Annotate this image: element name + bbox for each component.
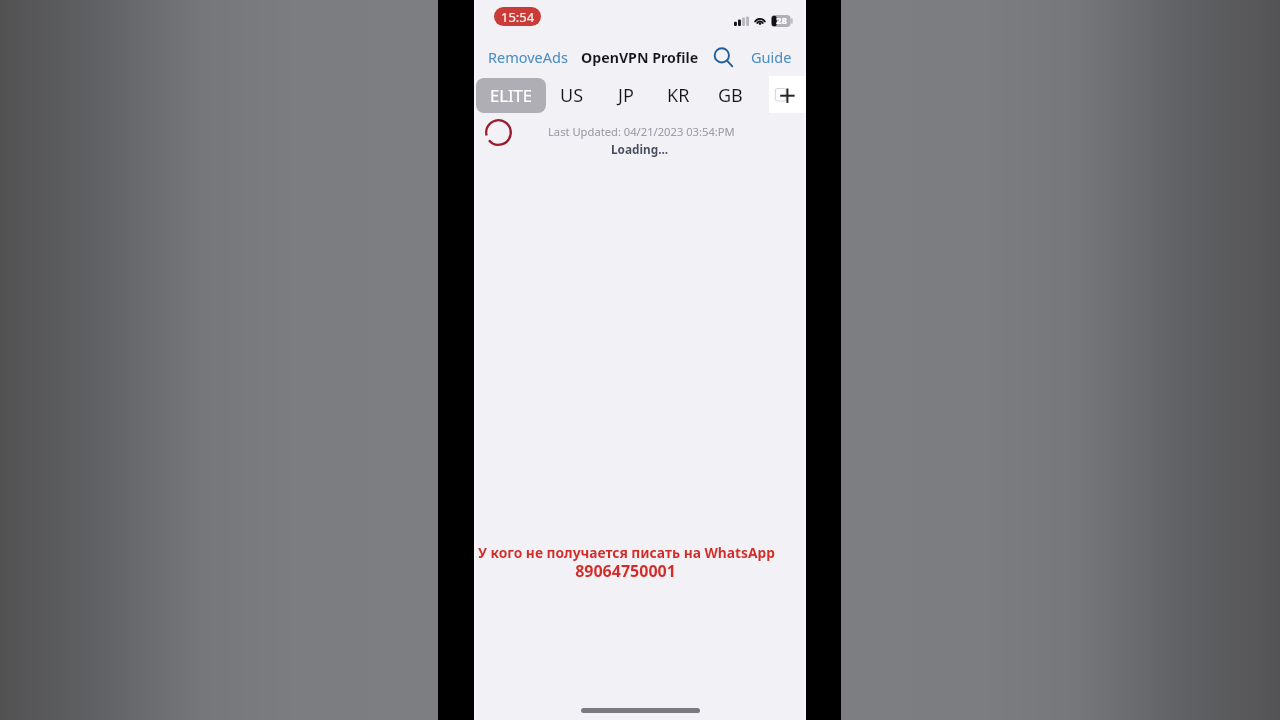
button[interactable]: RemoveAds <box>488 44 568 70</box>
button[interactable]: Search <box>711 44 735 70</box>
button[interactable]: GB <box>712 78 748 113</box>
button[interactable]: US <box>554 78 590 113</box>
staticText: У кого не получается писать на WhatsApp <box>478 543 775 562</box>
staticText: US <box>560 83 584 108</box>
button[interactable]: KR <box>660 78 696 113</box>
staticText: Last Updated: 04/21/2023 03:54:PM <box>548 124 735 139</box>
staticText: ELITE <box>490 84 532 107</box>
button[interactable]: Guide <box>751 44 792 70</box>
staticText: JP <box>618 83 634 108</box>
staticText: OpenVPN Profile <box>581 48 699 67</box>
staticText: Guide <box>751 47 792 67</box>
staticText: 28 <box>776 14 787 27</box>
staticText: GB <box>718 83 743 108</box>
staticText: KR <box>667 83 690 108</box>
staticText: RemoveAds <box>488 47 568 67</box>
staticText: 89064750001 <box>575 560 676 582</box>
staticText: 15:54 <box>501 8 535 26</box>
button[interactable]: ELITE <box>476 78 546 113</box>
button[interactable]: Add profile <box>769 76 806 113</box>
staticText: Loading... <box>611 141 669 157</box>
button[interactable]: JP <box>608 78 644 113</box>
